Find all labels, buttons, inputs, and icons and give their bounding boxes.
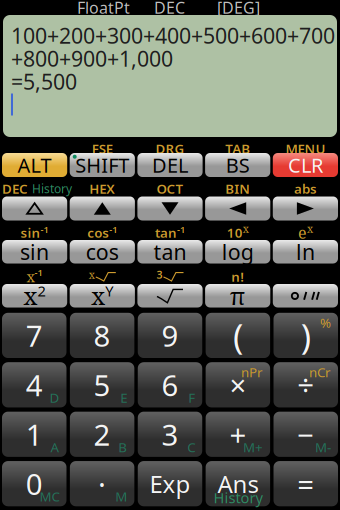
staticText: B <box>118 438 127 456</box>
button[interactable]: ALT <box>2 153 67 177</box>
staticText: Exp <box>149 468 190 500</box>
button[interactable]: SHIFT <box>70 153 135 177</box>
button[interactable]: x <box>2 284 67 307</box>
staticText: sin <box>20 238 49 266</box>
staticText: M+ <box>243 438 263 456</box>
staticText: DRG <box>155 140 184 157</box>
staticText: 2 <box>38 281 46 300</box>
staticText: · <box>98 464 106 503</box>
button[interactable]: cos <box>70 240 135 263</box>
button[interactable]: Ans <box>206 461 270 506</box>
button[interactable] <box>137 196 203 220</box>
button[interactable]: π <box>205 284 270 307</box>
staticText: History <box>213 488 262 507</box>
staticText: 0 <box>26 464 43 503</box>
staticText: FSE <box>92 140 113 157</box>
staticText: 9 <box>161 316 178 355</box>
staticText: M- <box>315 438 331 456</box>
button[interactable] <box>273 284 338 307</box>
staticText: -1 <box>35 266 43 279</box>
button[interactable] <box>2 196 67 220</box>
button[interactable]: 2 <box>70 412 134 457</box>
staticText: +800+900+1,000 <box>11 44 173 73</box>
staticText: 8 <box>94 316 111 355</box>
button[interactable]: − <box>273 412 338 457</box>
staticText: = <box>297 464 314 503</box>
button[interactable]: 8 <box>70 313 134 358</box>
button[interactable]: CLR <box>273 153 338 177</box>
staticText: 1 <box>26 415 43 454</box>
button[interactable] <box>273 196 338 220</box>
staticText: log <box>222 238 254 266</box>
button[interactable]: = <box>273 461 338 506</box>
button[interactable]: + <box>206 412 270 457</box>
staticText: x <box>27 266 35 286</box>
staticText: 6 <box>161 365 178 404</box>
staticText: DEC <box>2 180 28 197</box>
staticText: BIN <box>225 180 250 197</box>
staticText: DEC <box>154 0 185 18</box>
staticText: -1 <box>41 223 49 236</box>
staticText: D <box>49 389 59 406</box>
staticText: C <box>187 438 195 456</box>
staticText: MENU <box>285 140 325 157</box>
button[interactable]: Exp <box>138 461 202 506</box>
button[interactable]: 3 <box>138 412 202 457</box>
staticText: FloatPt <box>77 0 130 18</box>
staticText: 7 <box>26 316 43 355</box>
staticText: 100+200+300+400+500+600+700 <box>11 21 335 50</box>
button[interactable] <box>205 196 270 220</box>
staticText: SHIFT <box>75 152 129 178</box>
staticText: ÷ <box>297 365 314 404</box>
button[interactable]: 7 <box>2 313 66 358</box>
staticText: sin <box>21 224 41 241</box>
button[interactable]: ( <box>206 313 270 358</box>
button[interactable]: 0 <box>2 461 66 506</box>
staticText: + <box>229 415 246 454</box>
staticText: CLR <box>288 152 323 178</box>
button[interactable]: DEL <box>137 153 203 177</box>
staticText: F <box>188 389 195 406</box>
button[interactable]: 4 <box>2 362 66 407</box>
button[interactable] <box>137 284 203 307</box>
staticText: x <box>24 279 38 312</box>
staticText: − <box>297 415 314 454</box>
button[interactable] <box>70 196 135 220</box>
staticText: HEX <box>89 180 115 197</box>
staticText: =5,500 <box>11 67 77 96</box>
staticText: x <box>243 221 249 236</box>
staticText: 3 <box>156 267 162 282</box>
staticText: x <box>91 279 105 312</box>
button[interactable]: BS <box>205 153 270 177</box>
button[interactable]: log <box>205 240 270 263</box>
staticText: E <box>120 389 127 406</box>
staticText: ln <box>296 238 315 266</box>
staticText: e <box>298 222 307 243</box>
button[interactable]: · <box>70 461 134 506</box>
button[interactable]: x <box>70 284 135 307</box>
staticText: x <box>307 221 313 236</box>
staticText: tan <box>153 238 186 266</box>
button[interactable]: tan <box>137 240 203 263</box>
button[interactable]: 1 <box>2 412 66 457</box>
button[interactable]: 9 <box>138 313 202 358</box>
button[interactable]: sin <box>2 240 67 263</box>
button[interactable]: 6 <box>138 362 202 407</box>
staticText: tan <box>155 224 177 241</box>
staticText: 2 <box>94 415 111 454</box>
staticText: Y <box>105 281 113 300</box>
staticText: BS <box>226 152 250 178</box>
button[interactable]: ) <box>273 313 338 358</box>
button[interactable]: × <box>206 362 270 407</box>
staticText: cos <box>87 224 109 241</box>
staticText: ALT <box>18 152 52 178</box>
staticText: n! <box>231 268 244 285</box>
button[interactable]: 5 <box>70 362 134 407</box>
staticText: A <box>50 438 59 456</box>
staticText: 5 <box>94 365 111 404</box>
staticText: π <box>230 279 246 312</box>
staticText: nCr <box>309 363 331 381</box>
button[interactable]: ln <box>273 240 338 263</box>
button[interactable]: ÷ <box>273 362 338 407</box>
staticText: -1 <box>177 223 185 236</box>
